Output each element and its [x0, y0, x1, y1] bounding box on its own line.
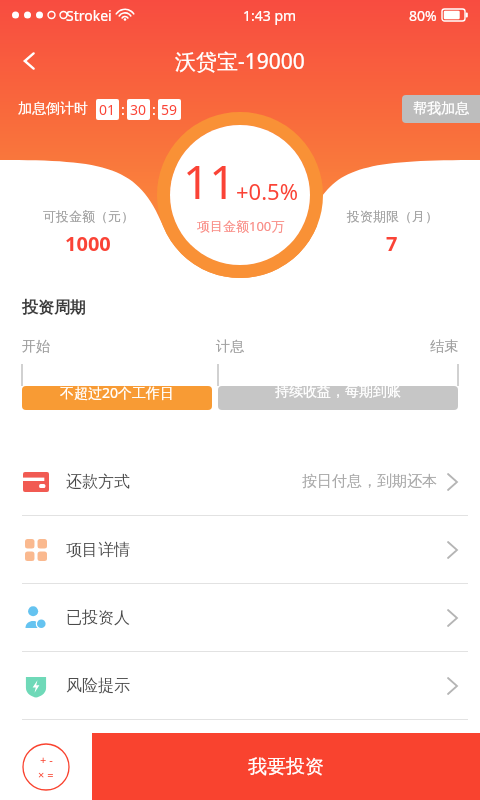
- button[interactable]: Back: [6, 37, 54, 85]
- staticText: 投资周期: [22, 298, 86, 318]
- button[interactable]: 帮我加息: [402, 95, 480, 123]
- staticText: 按日付息，到期还本: [302, 472, 437, 491]
- staticText: 帮我加息: [413, 100, 469, 118]
- staticText: 还款方式: [66, 472, 130, 492]
- button[interactable]: 风险提示: [0, 652, 480, 719]
- staticText: 7: [386, 230, 398, 257]
- button[interactable]: 我要投资: [92, 733, 480, 800]
- staticText: 59: [161, 100, 178, 119]
- staticText: 01: [99, 100, 116, 119]
- staticText: Strokei: [66, 6, 112, 25]
- staticText: 可投金额（元）: [43, 208, 134, 224]
- staticText: 1:43 pm: [243, 6, 297, 25]
- button[interactable]: 还款方式: [0, 448, 480, 515]
- staticText: × =: [38, 767, 54, 782]
- staticText: 风险提示: [66, 676, 130, 696]
- staticText: :: [121, 100, 125, 119]
- staticText: 80%: [409, 6, 437, 25]
- button[interactable]: 已投资人: [0, 584, 480, 651]
- staticText: 加息倒计时: [18, 100, 88, 118]
- button[interactable]: 项目详情: [0, 516, 480, 583]
- staticText: 1000: [65, 230, 111, 257]
- staticText: 已投资人: [66, 608, 130, 628]
- staticText: 项目金额100万: [197, 217, 285, 235]
- staticText: +0.5%: [236, 176, 298, 206]
- staticText: 不超过20个工作日: [22, 383, 212, 402]
- button[interactable]: Calculator: [0, 733, 92, 800]
- staticText: 开始: [22, 338, 50, 356]
- staticText: 项目详情: [66, 540, 130, 560]
- staticText: 结束: [430, 338, 458, 356]
- staticText: 沃贷宝-19000: [175, 47, 305, 76]
- staticText: 我要投资: [248, 755, 324, 779]
- staticText: 11: [183, 150, 236, 213]
- staticText: + -: [40, 752, 53, 767]
- staticText: 投资期限（月）: [347, 208, 438, 224]
- staticText: 持续收益，每期到账: [218, 383, 458, 401]
- staticText: :: [152, 100, 156, 119]
- staticText: 计息: [216, 338, 244, 356]
- staticText: 30: [130, 100, 147, 119]
